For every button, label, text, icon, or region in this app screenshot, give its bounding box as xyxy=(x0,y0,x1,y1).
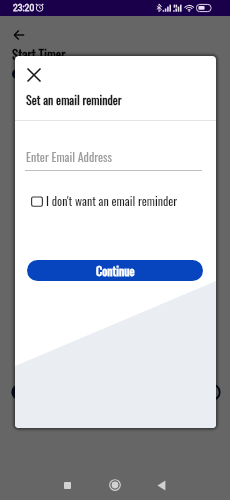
button[interactable]: I don't want an email reminder xyxy=(31,191,178,211)
button[interactable]: Enter Email Address xyxy=(25,142,202,170)
staticText: Set an email reminder xyxy=(26,91,122,109)
button[interactable]: Back xyxy=(148,471,176,499)
button[interactable]: Recents xyxy=(53,471,81,499)
button[interactable]: Back xyxy=(7,26,31,50)
staticText: Start Timer xyxy=(12,44,66,63)
staticText: I don't want an email reminder xyxy=(46,192,178,210)
staticText: Enter Email Address xyxy=(26,148,113,166)
button[interactable]: Home xyxy=(101,471,129,499)
button[interactable]: Continue xyxy=(27,260,203,281)
staticText: 23:20 xyxy=(13,3,35,13)
staticText: Continue xyxy=(96,262,135,280)
button[interactable]: Close xyxy=(19,60,49,90)
